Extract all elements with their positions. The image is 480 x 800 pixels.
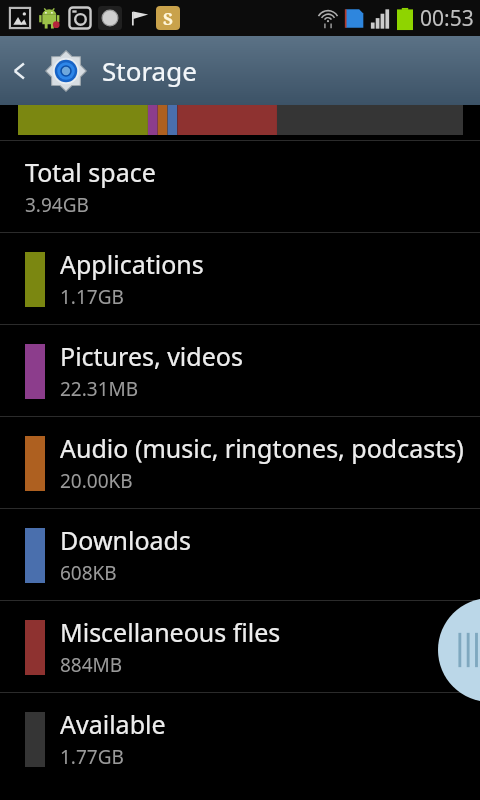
button[interactable]: Miscellaneous files [0, 601, 480, 692]
button[interactable]: Audio (music, ringtones, podcasts) [0, 417, 480, 508]
staticText: 1.77GB [60, 744, 124, 770]
staticText: 22.31MB [60, 376, 139, 402]
button[interactable]: Applications [0, 233, 480, 324]
staticText: Available [60, 707, 166, 741]
staticText: 00:53 [420, 4, 474, 33]
staticText: 3.94GB [25, 192, 89, 218]
staticText: Pictures, videos [60, 339, 243, 373]
button[interactable]: Back [0, 36, 40, 105]
button[interactable]: Downloads [0, 509, 480, 600]
button[interactable]: Total space [0, 141, 480, 232]
staticText: Total space [25, 155, 156, 189]
staticText: 1.17GB [60, 284, 124, 310]
staticText: Storage [102, 53, 197, 88]
staticText: Miscellaneous files [60, 615, 281, 649]
staticText: 20.00KB [60, 468, 133, 494]
button[interactable]: Available [0, 693, 480, 784]
button[interactable]: Pictures, videos [0, 325, 480, 416]
staticText: Applications [60, 247, 204, 281]
staticText: S [163, 7, 173, 30]
staticText: 608KB [60, 560, 117, 586]
staticText: Downloads [60, 523, 191, 557]
staticText: Audio (music, ringtones, podcasts) [60, 431, 464, 465]
staticText: 884MB [60, 652, 123, 678]
